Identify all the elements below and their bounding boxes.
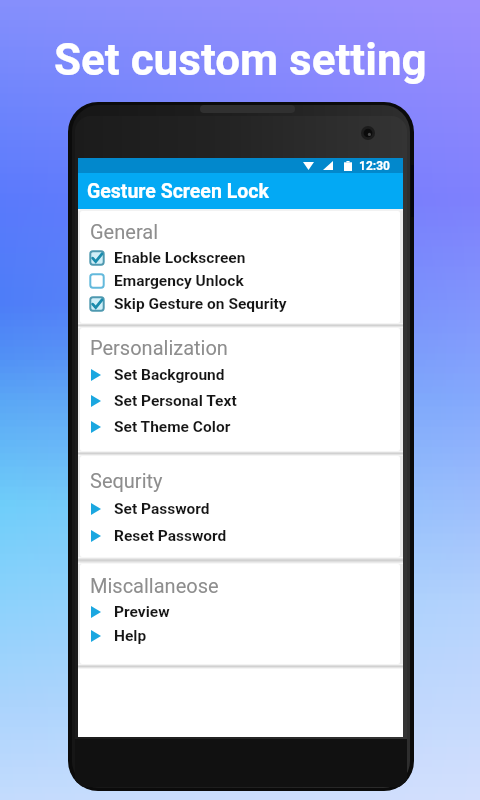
staticText: Preview	[114, 603, 170, 621]
button[interactable]: Set Background	[80, 362, 400, 388]
button[interactable]: Help	[80, 624, 400, 648]
staticText: Help	[114, 627, 147, 645]
staticText: Skip Gesture on Sequrity	[114, 295, 287, 313]
button[interactable]: Set Password	[80, 495, 400, 522]
staticText: Set Background	[114, 366, 225, 384]
staticText: Enable Lockscreen	[114, 249, 246, 267]
staticText: General	[90, 220, 159, 243]
button[interactable]: Reset Password	[80, 522, 400, 549]
staticText: Set Theme Color	[114, 418, 231, 436]
button[interactable]: Enable Lockscreen	[80, 246, 400, 269]
staticText: 12:30	[359, 159, 390, 173]
staticText: Set custom setting	[54, 34, 427, 86]
staticText: Miscallaneose	[90, 574, 219, 597]
staticText: Set Personal Text	[114, 392, 237, 410]
staticText: Reset Password	[114, 527, 227, 545]
staticText: Gesture Screen Lock	[87, 180, 269, 203]
staticText: Emargency Unlock	[114, 272, 244, 290]
staticText: Set Password	[114, 500, 210, 518]
button[interactable]: Set Personal Text	[80, 388, 400, 414]
button[interactable]: Skip Gesture on Sequrity	[80, 292, 400, 315]
staticText: Personalization	[90, 336, 228, 359]
button[interactable]: Preview	[80, 600, 400, 624]
staticText: Sequrity	[90, 469, 163, 492]
button[interactable]: Set Theme Color	[80, 414, 400, 440]
button[interactable]: Emargency Unlock	[80, 269, 400, 292]
button[interactable]: Gesture Screen Lock	[78, 173, 403, 209]
